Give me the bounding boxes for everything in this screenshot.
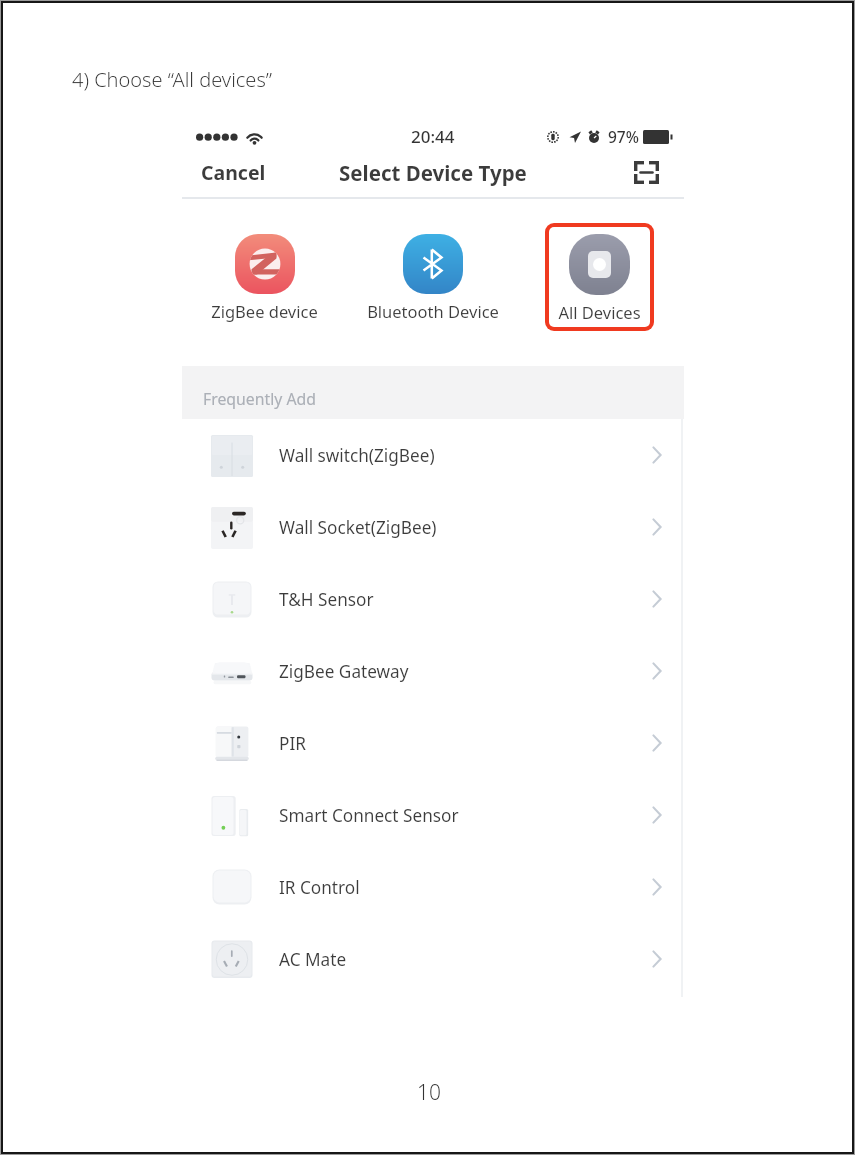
button[interactable]: IR Control: [182, 851, 684, 923]
staticText: Bluetooth Device: [367, 300, 499, 322]
button[interactable]: ZigBee Gateway: [182, 635, 684, 707]
staticText: 97%: [608, 126, 639, 147]
button[interactable]: ZigBee device: [180, 223, 348, 331]
staticText: Smart Connect Sensor: [279, 804, 459, 827]
staticText: PIR: [279, 732, 306, 755]
staticText: All Devices: [558, 301, 641, 323]
button[interactable]: AC Mate: [182, 923, 684, 995]
staticText: T&H Sensor: [279, 588, 374, 611]
staticText: AC Mate: [279, 948, 347, 971]
button[interactable]: Bluetooth Device: [349, 223, 517, 331]
staticText: 20:44: [411, 125, 455, 148]
button[interactable]: Wall switch(ZigBee): [182, 419, 684, 491]
staticText: Frequently Add: [203, 388, 316, 410]
staticText: 10: [417, 1078, 441, 1107]
button[interactable]: PIR: [182, 707, 684, 779]
button[interactable]: Scan QR code: [620, 152, 684, 193]
staticText: ZigBee Gateway: [279, 660, 409, 683]
staticText: 4) Choose “All devices”: [72, 66, 272, 93]
staticText: ZigBee device: [211, 300, 318, 322]
staticText: Wall Socket(ZigBee): [279, 516, 437, 539]
button[interactable]: Cancel: [182, 150, 285, 195]
button[interactable]: T&H Sensor: [182, 563, 684, 635]
button[interactable]: Smart Connect Sensor: [182, 779, 684, 851]
staticText: Wall switch(ZigBee): [279, 444, 435, 467]
staticText: Select Device Type: [339, 159, 527, 187]
staticText: Cancel: [201, 159, 266, 186]
button[interactable]: All Devices: [515, 223, 683, 331]
staticText: IR Control: [279, 876, 360, 899]
button[interactable]: Wall Socket(ZigBee): [182, 491, 684, 563]
